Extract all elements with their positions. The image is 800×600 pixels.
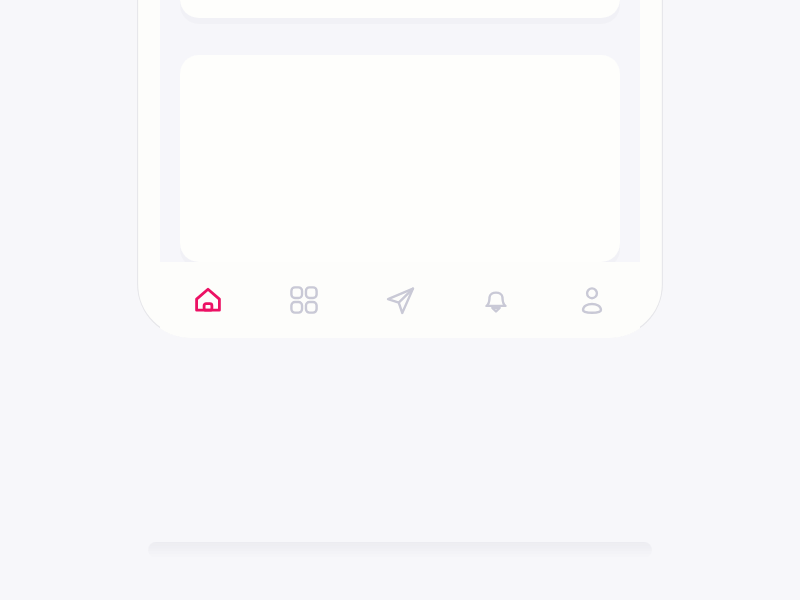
- button[interactable]: Notifications: [448, 262, 544, 338]
- button[interactable]: Categories: [256, 262, 352, 338]
- button[interactable]: Profile: [544, 262, 640, 338]
- button[interactable]: Home: [160, 262, 256, 338]
- button[interactable]: Send: [352, 262, 448, 338]
